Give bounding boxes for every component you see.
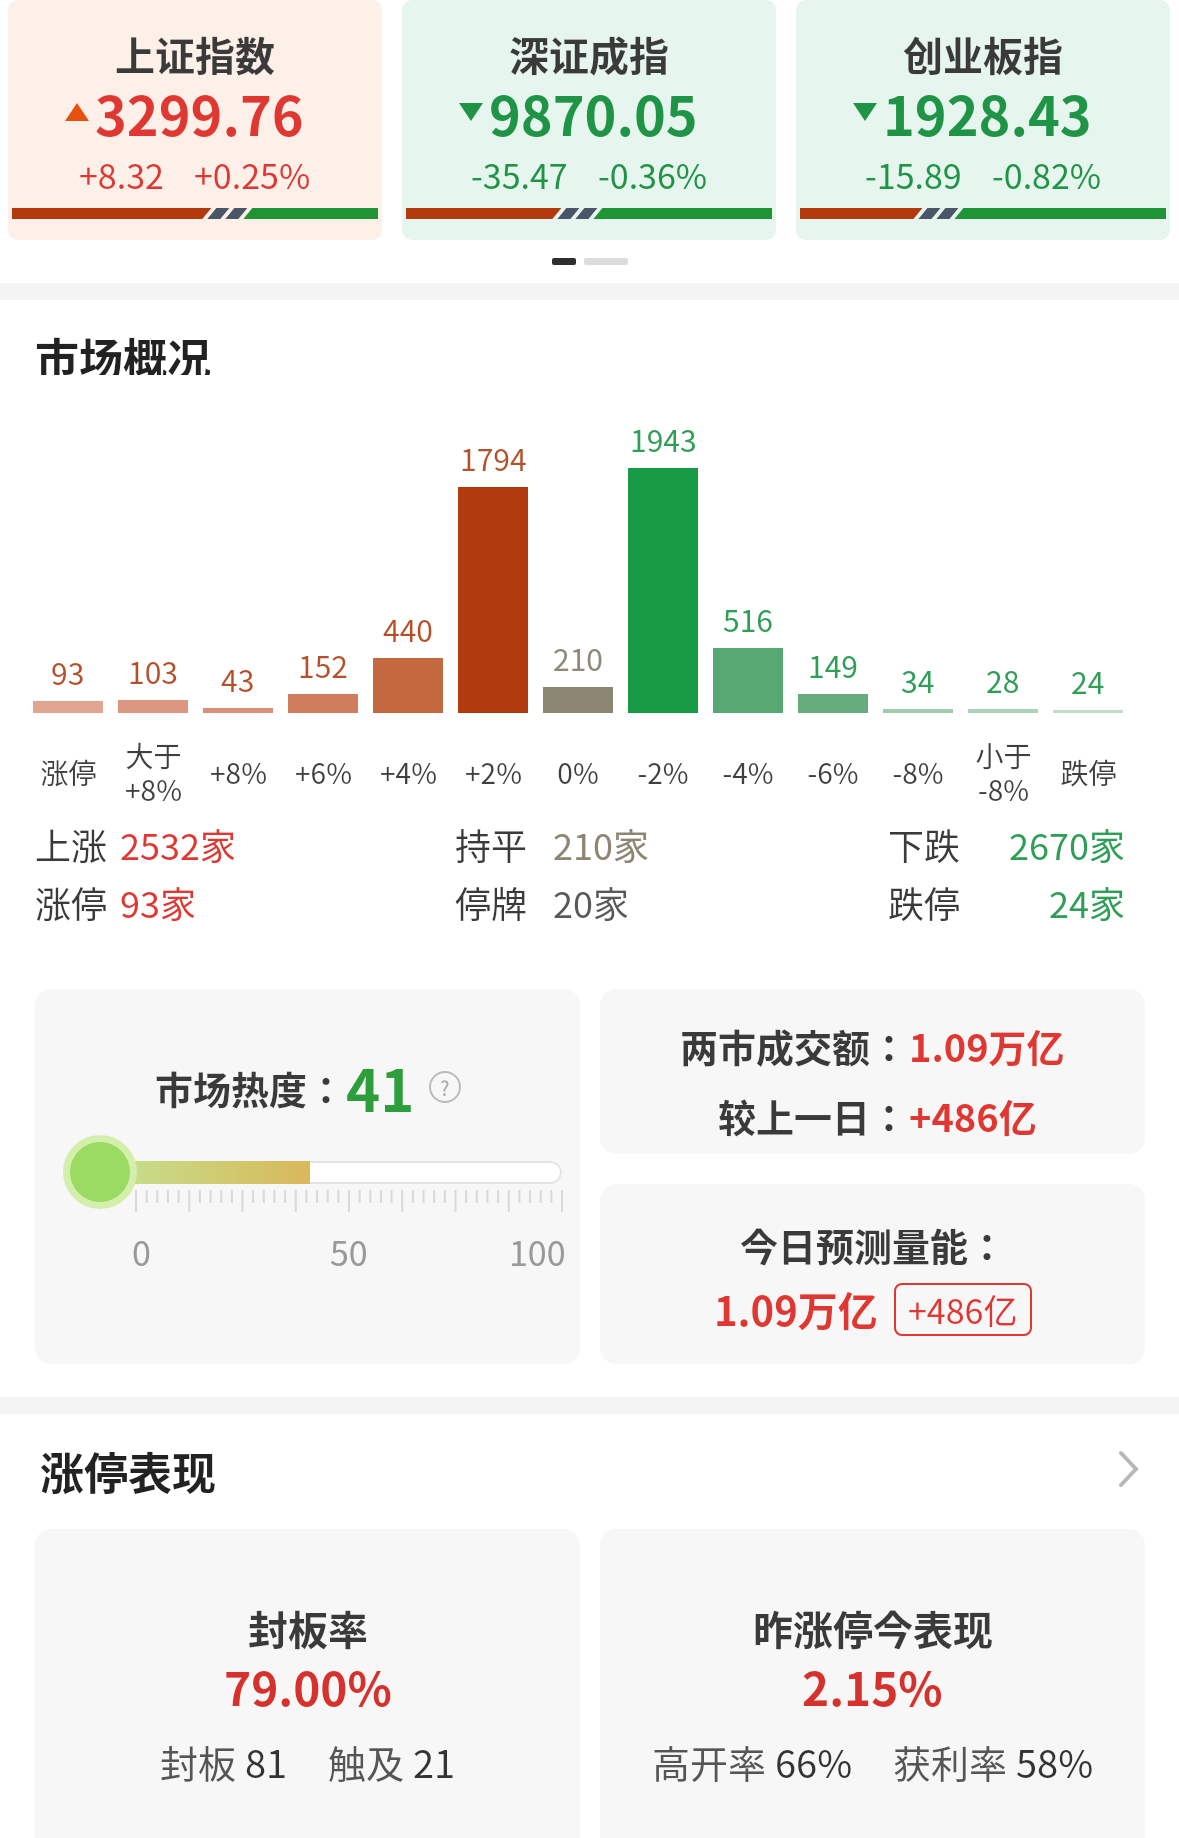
staticText: 高开率 [652,1734,775,1789]
staticText: 上涨 [35,818,108,870]
staticText: -35.47 [471,150,568,199]
staticText: 152 [298,643,348,686]
staticText: 两市成交额： [680,1018,909,1073]
staticText: 较上一日： [718,1088,909,1143]
staticText: 3299.76 [95,73,304,151]
staticText: 跌停 [1060,752,1117,793]
staticText: 2670家 [1009,818,1125,870]
staticText: 下跌 [888,818,961,870]
button[interactable]: 创业板指 [796,0,1170,240]
staticText: 持平 [455,818,528,870]
staticText: 1.09万亿 [714,1280,878,1338]
staticText: 创业板指 [903,25,1063,83]
staticText: 停牌 [455,876,528,928]
staticText: 0% [557,752,599,793]
staticText: 封板 [160,1734,245,1789]
button[interactable]: 封板率 [35,1529,580,1838]
staticText: 封板率 [248,1599,368,1657]
button[interactable]: 上证指数 [8,0,382,240]
staticText: 21 [413,1734,456,1789]
button[interactable]: 涨停表现 [0,1439,1179,1499]
staticText: 涨停 [40,752,97,793]
button[interactable]: 市场热度： [35,989,580,1364]
staticText: +8% [210,752,267,793]
staticText: 深证成指 [509,25,669,83]
staticText: 149 [808,643,858,686]
staticText: 516 [723,597,773,640]
staticText: 大于 +8% [125,735,182,809]
staticText: 上证指数 [115,25,275,83]
staticText: 获利率 [893,1734,1016,1789]
staticText: 1943 [630,417,697,460]
staticText: 24 [1071,659,1105,702]
staticText: 81 [245,1734,288,1789]
staticText: 24家 [1049,876,1125,928]
staticText: 1.09万亿 [909,1018,1065,1073]
staticText: +4% [380,752,437,793]
staticText: 0 [132,1227,151,1276]
staticText: 2.15% [802,1653,943,1720]
staticText: 34 [901,658,935,701]
staticText: -6% [807,752,859,793]
staticText: 市场热度： [155,1060,346,1115]
staticText: 1794 [460,436,527,479]
staticText: 93家 [120,876,196,928]
staticText: +6% [295,752,352,793]
staticText: +486亿 [909,1088,1037,1143]
staticText: 103 [128,649,178,692]
staticText: -0.36% [598,150,708,199]
staticText: +8.32 [79,150,164,199]
staticText: 涨停 [35,876,108,928]
staticText: 涨停表现 [40,1439,216,1499]
staticText: -8% [892,752,944,793]
button[interactable]: 昨涨停今表现 [600,1529,1145,1838]
button[interactable]: 深证成指 [402,0,776,240]
staticText: -0.82% [992,150,1102,199]
staticText: -4% [722,752,774,793]
staticText: ? [440,1073,450,1102]
staticText: -15.89 [865,150,962,199]
staticText: 跌停 [888,876,961,928]
staticText: 440 [383,607,433,650]
staticText: 41 [346,1045,415,1129]
staticText: 20家 [553,876,629,928]
staticText: 210 [553,636,603,679]
staticText: 2532家 [120,818,236,870]
staticText: 100 [509,1227,566,1276]
staticText: 79.00% [224,1653,392,1720]
button[interactable]: 今日预测量能： [600,1184,1145,1364]
staticText: +0.25% [194,150,311,199]
staticText: 小于 -8% [975,735,1032,809]
staticText: 93 [51,650,85,693]
staticText: -2% [637,752,689,793]
staticText: 昨涨停今表现 [753,1599,993,1657]
staticText: +486亿 [908,1285,1018,1334]
staticText: 210家 [553,818,649,870]
staticText: 今日预测量能： [740,1217,1007,1272]
staticText: 市场概况 [35,325,211,375]
staticText: 28 [986,658,1020,701]
staticText: 66% [775,1734,853,1789]
button[interactable]: 两市成交额： [600,989,1145,1154]
staticText: 触及 [328,1734,413,1789]
staticText: 43 [221,657,255,700]
staticText: +2% [465,752,522,793]
staticText: 58% [1016,1734,1094,1789]
staticText: 9870.05 [489,73,698,151]
staticText: 50 [330,1227,368,1276]
staticText: 1928.43 [883,73,1092,151]
